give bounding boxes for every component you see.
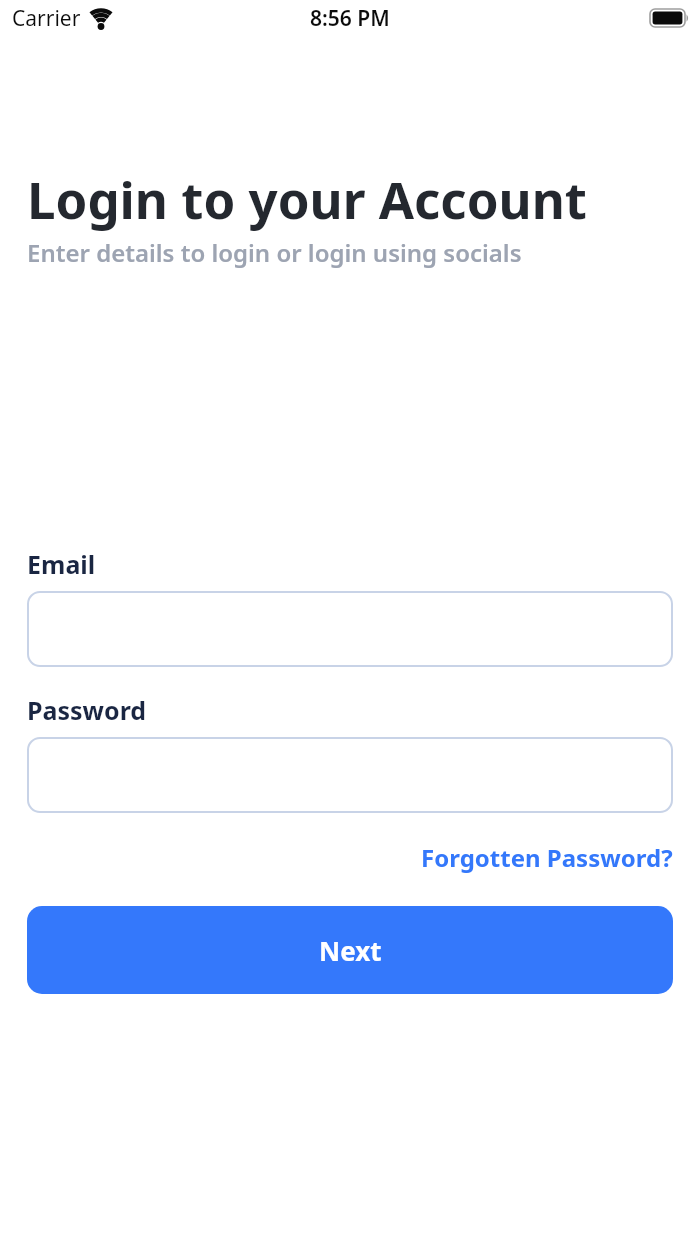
staticText: Login to your Account <box>27 164 587 233</box>
staticText: Password <box>27 693 147 727</box>
staticText: 8:56 PM <box>310 4 390 33</box>
staticText: Enter details to login or login using so… <box>27 236 522 269</box>
button[interactable] <box>27 737 673 813</box>
staticText: Email <box>27 547 96 581</box>
button[interactable] <box>27 591 673 667</box>
staticText: Carrier <box>12 4 81 33</box>
button[interactable]: Next <box>27 906 673 994</box>
staticText: Next <box>319 933 382 968</box>
button[interactable]: Forgotten Password? <box>421 841 673 874</box>
